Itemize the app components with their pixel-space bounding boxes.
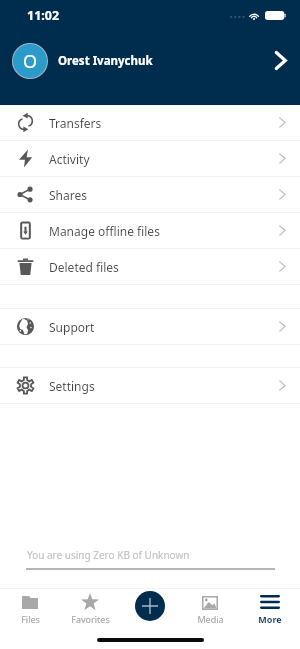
button[interactable]: Media: [180, 593, 240, 627]
staticText: Settings: [49, 378, 95, 394]
staticText: Support: [49, 319, 95, 335]
staticText: Favorites: [71, 613, 110, 625]
button[interactable]: Transfers: [0, 105, 300, 140]
button[interactable]: O: [0, 39, 300, 82]
staticText: O: [23, 49, 38, 74]
button[interactable]: Activity: [0, 141, 300, 176]
button[interactable]: Settings: [0, 368, 300, 403]
staticText: Orest Ivanychuk: [58, 53, 153, 69]
button[interactable]: Shares: [0, 177, 300, 212]
staticText: Deleted files: [49, 259, 119, 275]
staticText: More: [258, 613, 282, 625]
staticText: Files: [21, 613, 40, 625]
button[interactable]: Manage offline files: [0, 213, 300, 248]
staticText: Media: [197, 613, 224, 625]
staticText: Transfers: [49, 115, 102, 131]
staticText: You are using Zero KB of Unknown: [27, 548, 190, 562]
staticText: Shares: [49, 187, 87, 203]
button[interactable]: Add new: [135, 591, 165, 621]
other: Account details: [270, 50, 291, 71]
staticText: 11:02: [27, 7, 60, 24]
button[interactable]: Files: [0, 593, 60, 627]
button[interactable]: More: [240, 593, 300, 627]
staticText: Manage offline files: [49, 223, 160, 239]
button[interactable]: Support: [0, 309, 300, 344]
staticText: Activity: [49, 151, 90, 167]
button[interactable]: Deleted files: [0, 249, 300, 284]
button[interactable]: Favorites: [60, 593, 120, 627]
